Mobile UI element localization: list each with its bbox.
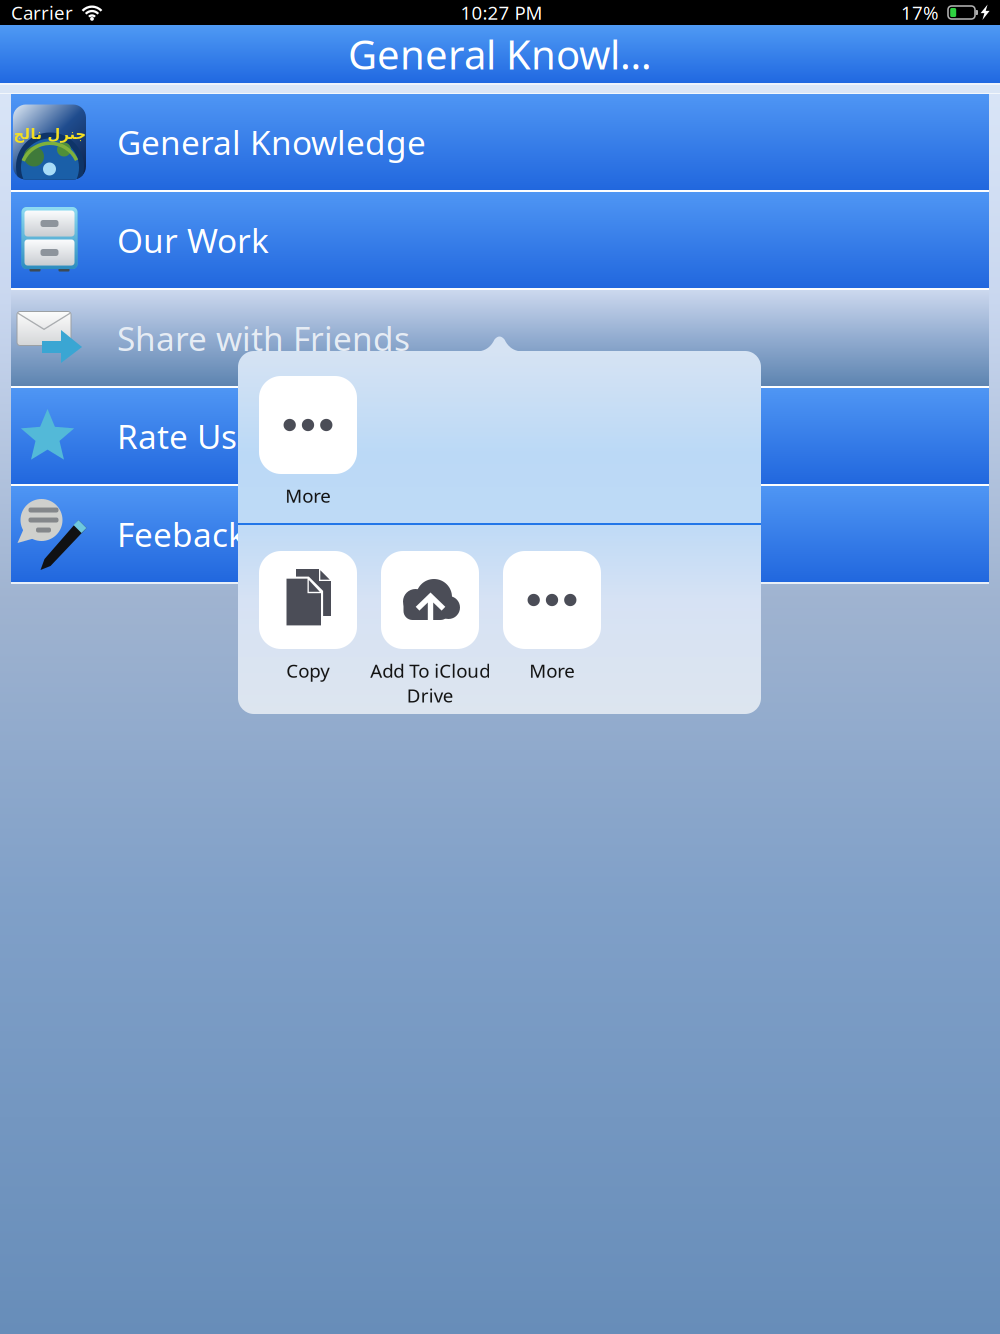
staticText: Carrier — [11, 0, 73, 25]
button[interactable]: جنرل نالج — [11, 94, 989, 190]
staticText: Feeback — [117, 512, 246, 556]
button[interactable]: Share with Friends — [11, 290, 989, 386]
staticText: Our Work — [117, 218, 269, 262]
staticText: Copy — [286, 658, 330, 683]
button[interactable]: More — [248, 376, 368, 531]
button[interactable]: Add To iCloud Drive — [370, 551, 490, 706]
button[interactable]: More — [492, 551, 612, 706]
staticText: Add To iCloud Drive — [370, 658, 490, 708]
staticText: General Knowl… — [348, 27, 652, 80]
staticText: Share with Friends — [117, 316, 410, 360]
staticText: General Knowledge — [117, 120, 426, 164]
button[interactable]: Copy — [248, 551, 368, 706]
staticText: 17% — [901, 0, 939, 25]
staticText: جنرل نالج — [13, 126, 86, 142]
button[interactable]: Feeback — [11, 486, 989, 582]
staticText: Rate Us — [117, 414, 237, 458]
staticText: More — [285, 483, 331, 508]
button[interactable]: Our Work — [11, 192, 989, 288]
button[interactable]: Rate Us — [11, 388, 989, 484]
staticText: 10:27 PM — [460, 0, 542, 25]
staticText: More — [529, 658, 575, 683]
